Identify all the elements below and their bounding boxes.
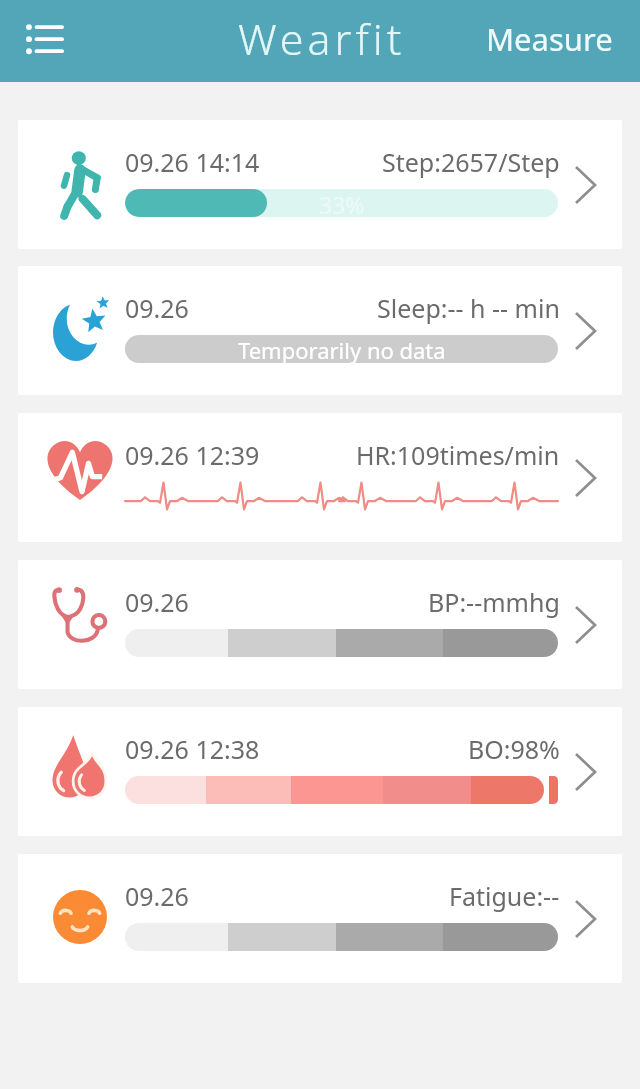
button[interactable]: 09.26 12:39 xyxy=(18,413,622,542)
button[interactable]: 09.26 xyxy=(18,560,622,689)
staticText: Fatigue:-- xyxy=(449,879,560,913)
staticText: Step:2657/Step xyxy=(382,145,560,179)
staticText: 33% xyxy=(319,189,365,217)
staticText: 09.26 12:38 xyxy=(125,732,260,766)
staticText: 09.26 xyxy=(125,585,189,619)
staticText: HR:109times/min xyxy=(356,438,560,472)
staticText: 09.26 12:39 xyxy=(125,438,260,472)
staticText: Sleep:-- h -- min xyxy=(377,291,560,325)
button[interactable]: 09.26 xyxy=(18,854,622,983)
staticText: BO:98% xyxy=(468,732,560,766)
staticText: 09.26 xyxy=(125,879,189,913)
button[interactable]: 09.26 14:14 xyxy=(18,120,622,249)
staticText: 09.26 xyxy=(125,291,189,325)
button[interactable]: 09.26 xyxy=(18,266,622,395)
staticText: BP:--mmhg xyxy=(428,585,560,619)
button[interactable]: 09.26 12:38 xyxy=(18,707,622,836)
staticText: 09.26 14:14 xyxy=(125,145,260,179)
button[interactable]: Measure xyxy=(474,8,625,70)
staticText: Measure xyxy=(486,18,613,60)
staticText: Temporarily no data xyxy=(238,335,446,363)
button[interactable]: Menu xyxy=(14,8,76,71)
staticText: Wearfit xyxy=(238,9,406,68)
